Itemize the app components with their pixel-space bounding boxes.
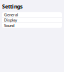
- staticText: Sound: [4, 23, 14, 28]
- staticText: Display: [4, 17, 17, 23]
- staticText: General: [4, 12, 18, 17]
- staticText: Settings: [2, 3, 23, 10]
